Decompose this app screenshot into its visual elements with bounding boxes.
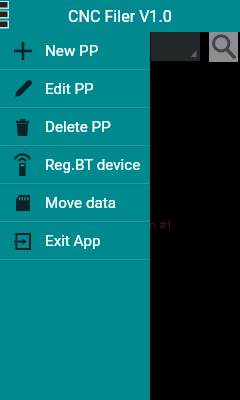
button[interactable]: Select program [151,32,200,61]
staticText: Session #1 [117,217,173,232]
staticText: New PP [45,42,99,60]
staticText: Edit PP [45,80,94,98]
staticText: Delete PP [45,118,111,136]
staticText: Move data [45,194,116,212]
button[interactable]: Edit PP [0,71,150,107]
button[interactable]: Exit App [0,223,150,259]
staticText: Reg.BT device [45,156,141,174]
staticText: Exit App [45,232,101,250]
button[interactable]: Open navigation drawer [0,0,14,32]
button[interactable]: Search [209,32,238,62]
button[interactable]: New PP [0,33,150,69]
button[interactable]: Move data [0,185,150,221]
staticText: CNC Filer V1.0 [68,7,172,26]
button[interactable]: Delete PP [0,109,150,145]
button[interactable]: Reg.BT device [0,147,150,183]
